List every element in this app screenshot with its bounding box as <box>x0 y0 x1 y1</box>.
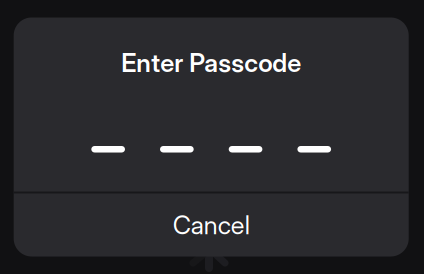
staticText: Cancel <box>173 210 250 240</box>
staticText: Enter Passcode <box>121 47 301 78</box>
button[interactable]: Cancel <box>14 193 409 256</box>
